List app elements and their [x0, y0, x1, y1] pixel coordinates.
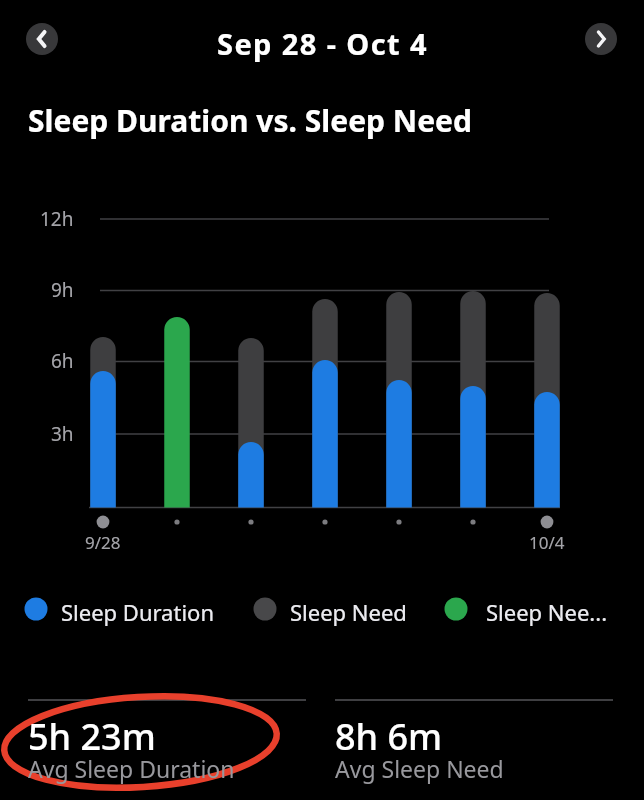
- staticText: 6h: [51, 348, 74, 374]
- staticText: 9/28: [85, 531, 121, 554]
- staticText: 5h 23m: [28, 712, 156, 761]
- staticText: 9h: [51, 277, 74, 303]
- staticText: 8h 6m: [335, 712, 443, 761]
- button[interactable]: [335, 688, 613, 798]
- staticText: Sleep Duration: [61, 597, 214, 627]
- staticText: 10/4: [529, 531, 565, 554]
- staticText: Avg Sleep Need: [335, 753, 504, 784]
- button[interactable]: [28, 688, 306, 798]
- button[interactable]: [585, 23, 617, 55]
- staticText: 3h: [51, 421, 74, 447]
- staticText: Sleep Need: [290, 597, 407, 627]
- staticText: 12h: [40, 206, 74, 232]
- staticText: Sleep Nee...: [486, 597, 608, 627]
- staticText: Sleep Duration vs. Sleep Need: [28, 100, 472, 141]
- staticText: Avg Sleep Duration: [28, 753, 235, 784]
- staticText: Sep 28 - Oct 4: [217, 24, 428, 63]
- button[interactable]: [26, 23, 58, 55]
